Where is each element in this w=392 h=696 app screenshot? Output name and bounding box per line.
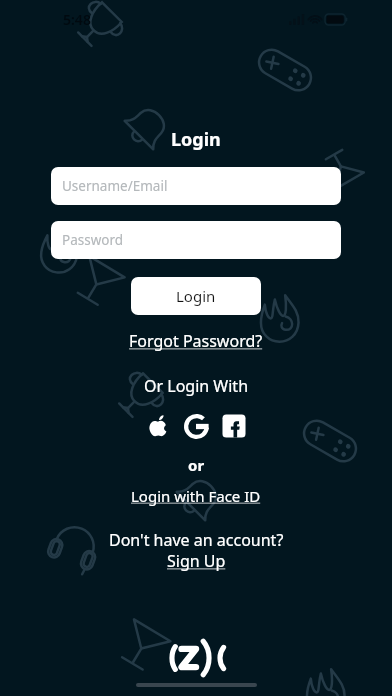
staticText: Sign Up bbox=[167, 550, 226, 572]
staticText: Login with Face ID bbox=[131, 486, 261, 506]
staticText: Username/Email bbox=[62, 177, 168, 195]
button[interactable]: Login bbox=[131, 277, 261, 315]
staticText: Login bbox=[171, 127, 221, 151]
button[interactable]: Username/Email bbox=[51, 167, 341, 205]
button[interactable]: Login with Facebook bbox=[221, 413, 247, 439]
staticText: Forgot Password? bbox=[129, 330, 263, 352]
staticText: Password bbox=[62, 231, 124, 249]
button[interactable]: Sign Up bbox=[167, 550, 226, 572]
button[interactable]: Login with Apple bbox=[145, 413, 171, 439]
button[interactable]: Login with Google bbox=[183, 413, 209, 439]
button[interactable]: Password bbox=[51, 221, 341, 259]
staticText: Or Login With bbox=[144, 375, 249, 397]
staticText: 5:48 bbox=[63, 10, 91, 29]
staticText: Login bbox=[176, 286, 216, 306]
staticText: Don't have an account? bbox=[109, 529, 284, 551]
staticText: or bbox=[188, 455, 205, 475]
button[interactable]: Login with Face ID bbox=[131, 486, 261, 506]
button[interactable]: Forgot Password? bbox=[129, 330, 263, 352]
